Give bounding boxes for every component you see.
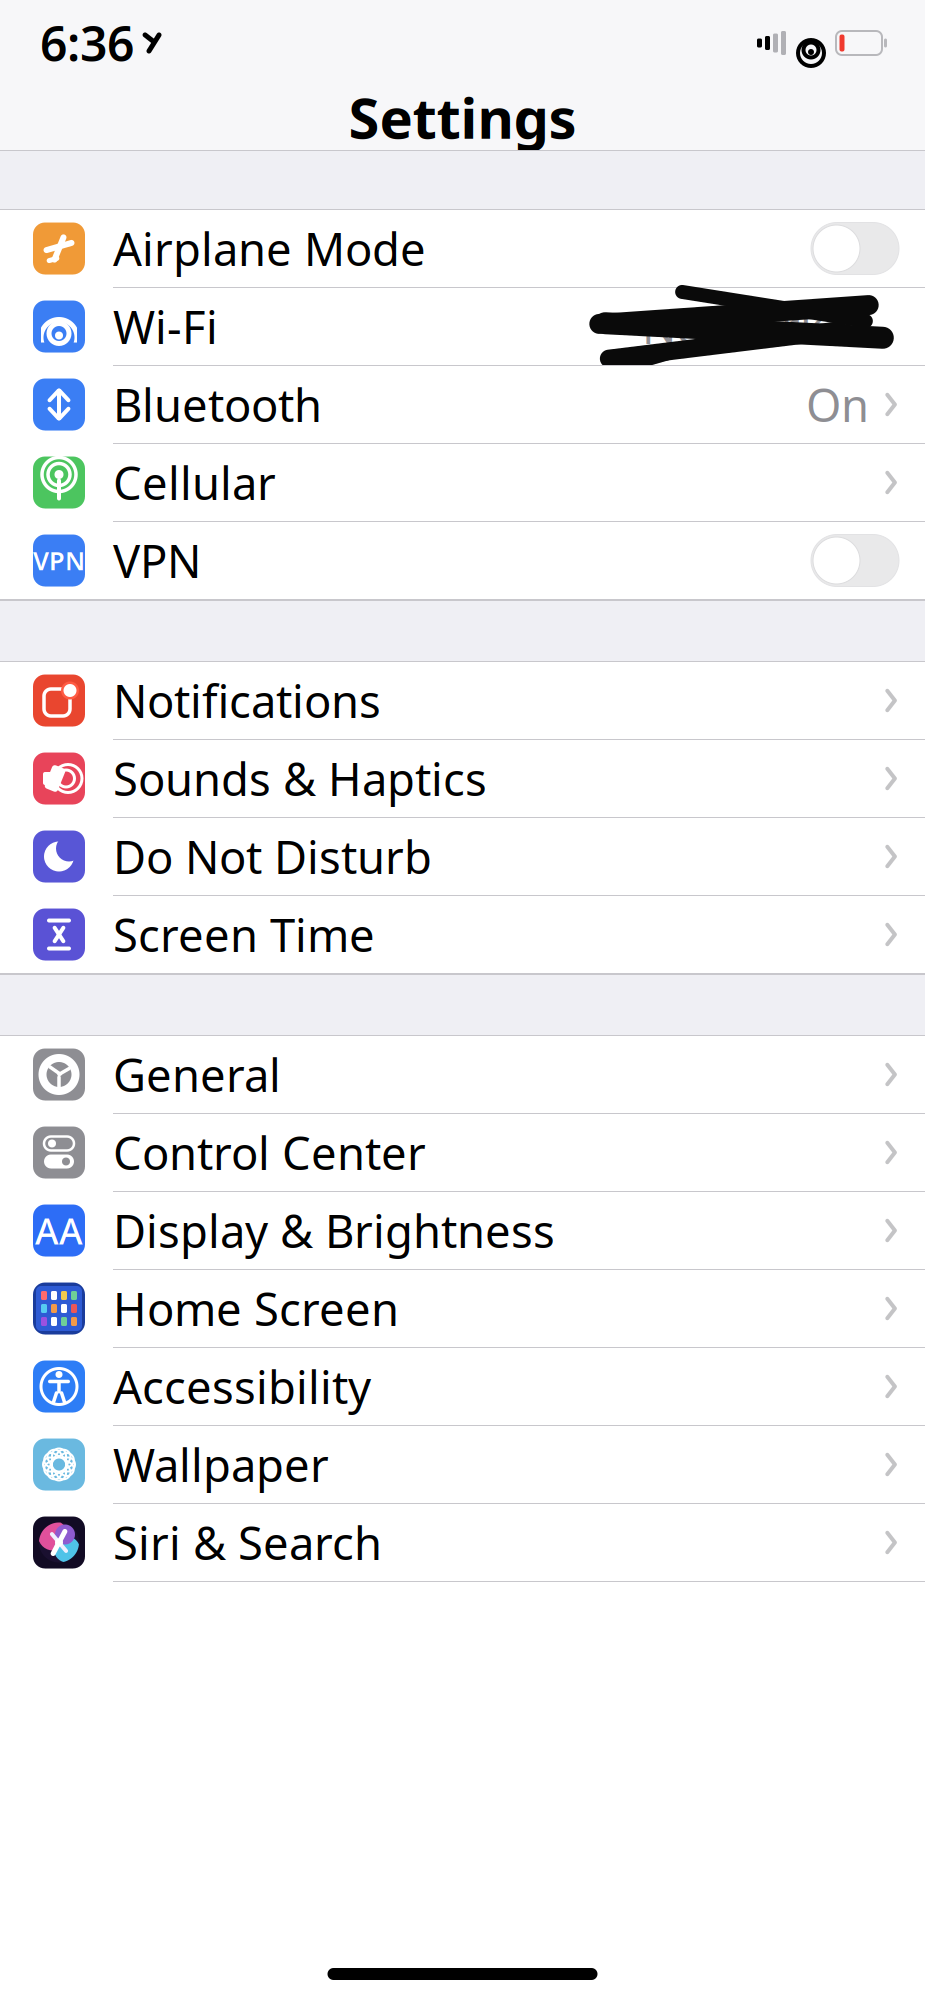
button[interactable]: Cellular xyxy=(0,444,925,522)
button[interactable]: Airplane Mode xyxy=(0,210,925,288)
staticText: VPN xyxy=(33,544,85,577)
button[interactable]: Bluetooth xyxy=(0,366,925,444)
button[interactable]: Siri & Search xyxy=(0,1504,925,1582)
button[interactable]: General xyxy=(0,1036,925,1114)
staticText: Display & Brightness xyxy=(113,1200,555,1261)
button[interactable]: Screen Time xyxy=(0,896,925,974)
staticText: Notifications xyxy=(113,670,381,731)
staticText: Bluetooth xyxy=(113,374,322,435)
button[interactable]: Wallpaper xyxy=(0,1426,925,1504)
staticText: Screen Time xyxy=(113,904,375,965)
staticText: Do Not Disturb xyxy=(113,826,432,887)
staticText: Network xyxy=(642,296,824,357)
button[interactable]: AA xyxy=(0,1192,925,1270)
button[interactable]: Home Screen xyxy=(0,1270,925,1348)
staticText: Wallpaper xyxy=(113,1434,329,1495)
staticText: Accessibility xyxy=(113,1356,371,1417)
staticText: VPN xyxy=(113,530,201,591)
button[interactable]: Do Not Disturb xyxy=(0,818,925,896)
staticText: Control Center xyxy=(113,1122,426,1183)
staticText: 6:36 xyxy=(40,11,134,75)
button[interactable]: VPN xyxy=(0,522,925,600)
staticText: Airplane Mode xyxy=(113,218,426,279)
staticText: Sounds & Haptics xyxy=(113,748,487,809)
staticText: Settings xyxy=(348,80,576,154)
staticText: Cellular xyxy=(113,452,276,513)
staticText: General xyxy=(113,1044,281,1105)
staticText: Siri & Search xyxy=(113,1512,382,1573)
staticText: Home Screen xyxy=(113,1278,399,1339)
button[interactable]: Notifications xyxy=(0,662,925,740)
button[interactable]: Sounds & Haptics xyxy=(0,740,925,818)
button[interactable]: Wi-Fi xyxy=(0,288,925,366)
staticText: AA xyxy=(35,1207,83,1254)
button[interactable]: Accessibility xyxy=(0,1348,925,1426)
staticText: On xyxy=(806,374,869,435)
staticText: Wi-Fi xyxy=(113,296,218,357)
button[interactable]: Control Center xyxy=(0,1114,925,1192)
